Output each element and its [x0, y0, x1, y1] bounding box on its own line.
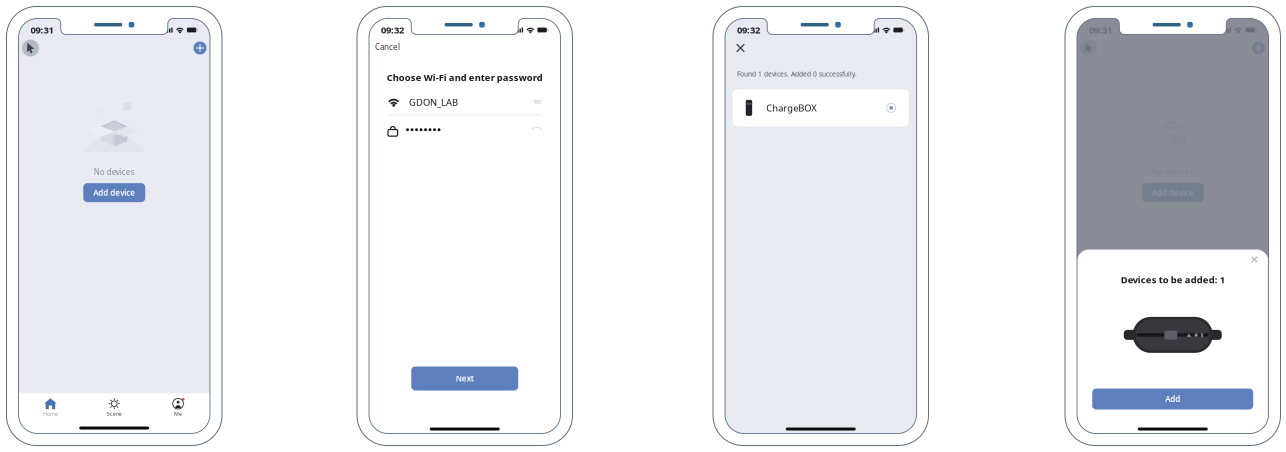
button[interactable]: Next [411, 366, 518, 390]
button[interactable]: Pointer [22, 39, 39, 56]
button[interactable]: Add device [83, 183, 145, 202]
staticText: Home [43, 410, 58, 417]
staticText: ChargeBOX [766, 102, 816, 114]
button[interactable]: Scene [82, 393, 146, 420]
staticText: Next [456, 373, 474, 384]
staticText: No devices [94, 166, 135, 177]
button[interactable]: Home [1077, 393, 1141, 420]
button[interactable]: Add device [193, 41, 206, 54]
button[interactable]: Add device [1142, 183, 1204, 202]
button[interactable]: Close [733, 40, 748, 55]
staticText: Add [1165, 394, 1180, 404]
staticText: Me [174, 410, 182, 417]
button[interactable]: Scene [1141, 393, 1205, 420]
staticText: Devices to be added: 1 [1121, 273, 1225, 286]
staticText: Add device [1152, 187, 1194, 198]
staticText: Scene [107, 410, 122, 417]
staticText: Found 1 devices. Added 0 successfully. [737, 69, 857, 78]
staticText: 09:31 [1089, 24, 1112, 36]
staticText: Add device [93, 187, 135, 198]
button[interactable]: Home [18, 393, 82, 420]
staticText: GDON_LAB [409, 96, 458, 108]
staticText: 09:31 [30, 24, 53, 36]
staticText: Choose Wi-Fi and enter password [387, 71, 543, 83]
button[interactable]: Show password [532, 125, 541, 130]
staticText: 09:32 [737, 24, 760, 36]
button[interactable]: Close [1248, 253, 1260, 265]
button[interactable]: Cancel [375, 40, 400, 53]
staticText: 09:32 [381, 24, 404, 36]
staticText: No devices [1152, 166, 1193, 177]
button[interactable]: Me [1205, 393, 1268, 420]
button[interactable]: Add device [1252, 41, 1265, 54]
button[interactable]: Add [1092, 388, 1253, 409]
button[interactable]: ChargeBOX [733, 89, 909, 126]
button[interactable]: Pointer [1080, 39, 1097, 56]
button[interactable]: Choose network [533, 98, 541, 105]
staticText: Cancel [375, 41, 400, 52]
button[interactable]: Me [146, 393, 210, 420]
